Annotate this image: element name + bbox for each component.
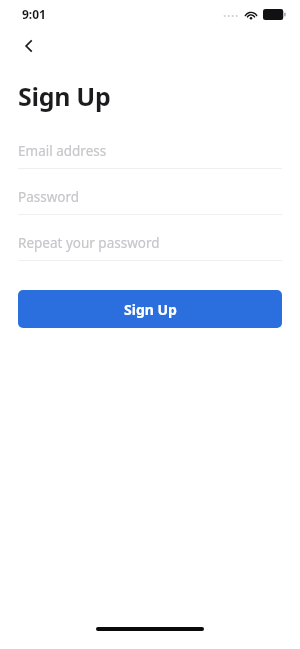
button[interactable]: Back (12, 29, 46, 63)
staticText: 9:01 (22, 6, 46, 22)
button[interactable]: Password (18, 180, 282, 214)
button[interactable]: Repeat your password (18, 226, 282, 260)
staticText: Sign Up (124, 300, 177, 319)
staticText: Repeat your password (18, 234, 160, 252)
staticText: Email address (18, 142, 107, 160)
button[interactable]: Email address (18, 134, 282, 168)
button[interactable]: Sign Up (18, 290, 282, 328)
staticText: Password (18, 188, 80, 206)
staticText: Sign Up (18, 79, 111, 113)
